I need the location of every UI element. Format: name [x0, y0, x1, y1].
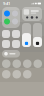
button[interactable]: Hearing	[12, 40, 20, 48]
button[interactable]: Personal Hotspot	[12, 18, 18, 24]
button[interactable]: Dark Mode	[23, 70, 31, 78]
staticText: 9:41	[3, 1, 10, 6]
button[interactable]: Accessibility Shortcuts	[12, 70, 21, 78]
button[interactable]: Camera	[33, 59, 42, 68]
button[interactable]: AirDrop	[12, 10, 18, 16]
button[interactable]: Screen Mirroring	[2, 30, 10, 38]
button[interactable]: Cellular Data	[4, 18, 10, 24]
button[interactable]: Volume	[33, 23, 42, 47]
button[interactable]: Now Playing	[22, 7, 42, 21]
button[interactable]: Brightness	[22, 23, 31, 47]
button[interactable]: Airplane Mode	[4, 10, 10, 16]
button[interactable]: Calculator	[23, 59, 31, 68]
button[interactable]: Remote	[2, 70, 10, 78]
button[interactable]: Low Power Mode	[2, 40, 10, 48]
button[interactable]: Timer	[12, 59, 21, 68]
button[interactable]: Focus	[2, 50, 20, 57]
button[interactable]: Flashlight	[2, 59, 10, 68]
button[interactable]: Orientation Lock	[12, 30, 20, 38]
